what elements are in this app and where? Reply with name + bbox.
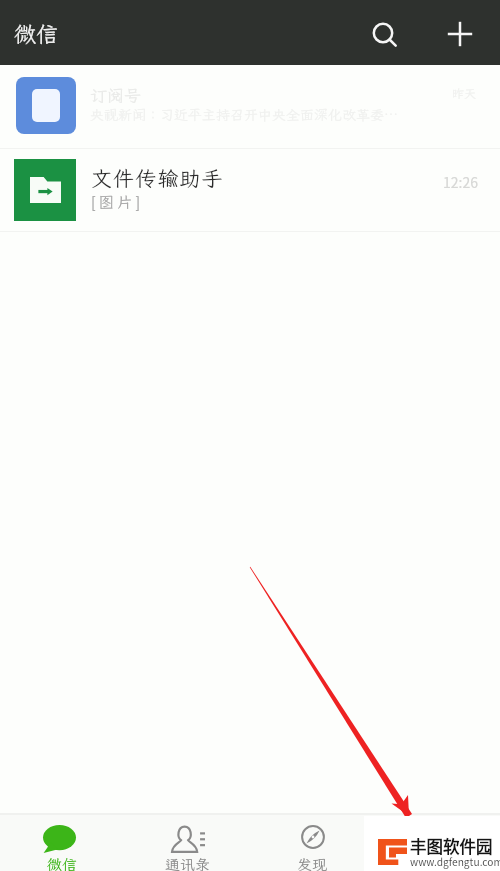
staticText: 丰图软件园 (410, 834, 493, 858)
staticText: 通讯录 (165, 855, 211, 871)
staticText: 文件传输助手 (91, 164, 224, 192)
staticText: 我 (430, 855, 446, 871)
button[interactable]: 订阅号 (0, 65, 500, 148)
button[interactable]: Search (355, 5, 411, 61)
staticText: 订阅号 (90, 84, 141, 106)
button[interactable]: 我 (375, 815, 500, 871)
staticText: www.dgfengtu.com (410, 854, 500, 869)
button[interactable]: 微信 (0, 815, 125, 871)
button[interactable]: New chat (432, 6, 488, 62)
staticText: 12:26 (443, 172, 478, 192)
button[interactable]: 发现 (250, 815, 375, 871)
staticText: 微信 (14, 19, 59, 48)
staticText: 发现 (297, 855, 328, 871)
button[interactable]: 文件传输助手 (0, 149, 500, 231)
staticText: [图片] (90, 191, 144, 212)
button[interactable]: 通讯录 (125, 815, 250, 871)
staticText: 央视新闻：习近平主持召开中央全面深化改革委员会… (90, 106, 410, 124)
staticText: 昨天 (452, 86, 477, 102)
staticText: 微信 (47, 855, 78, 871)
